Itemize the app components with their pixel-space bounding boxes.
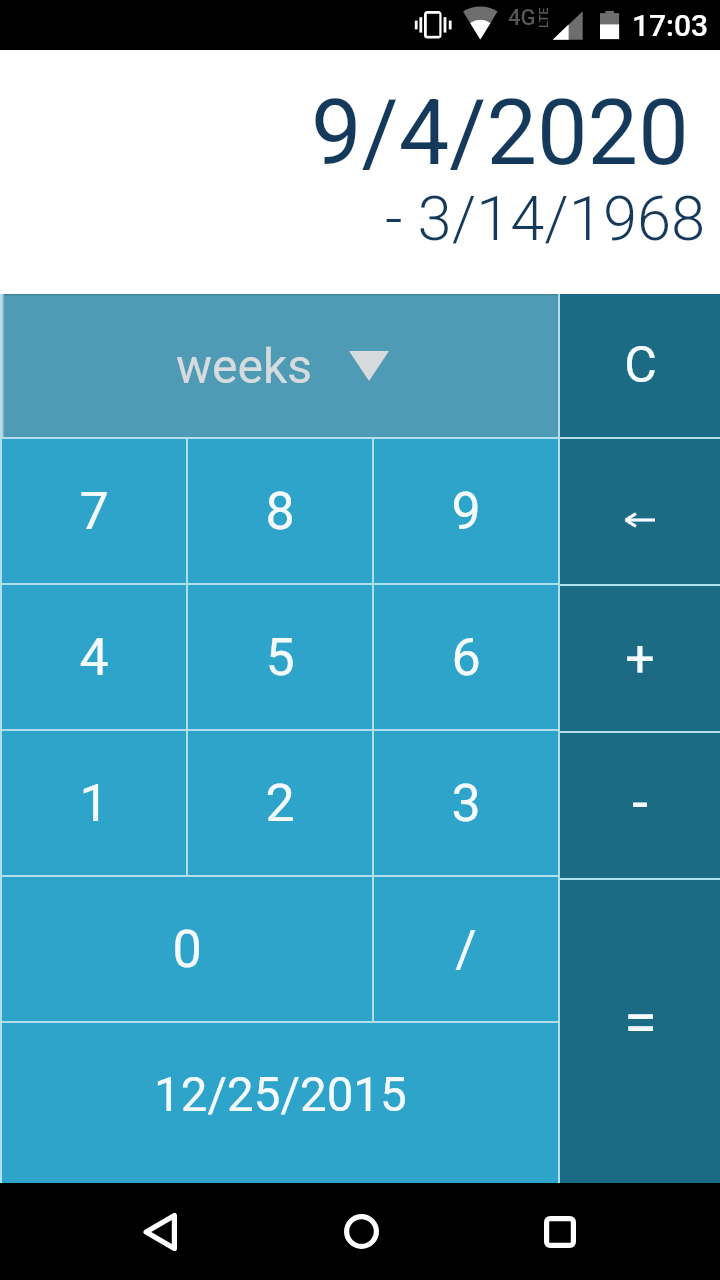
button[interactable]: / [374,877,558,1021]
staticText: - [632,768,649,836]
staticText: 9/4/2020 [311,81,689,186]
button[interactable]: 6 [374,585,558,729]
button[interactable]: 8 [188,439,372,583]
button[interactable]: 5 [188,585,372,729]
button[interactable]: 1 [2,731,186,875]
button[interactable]: 9 [374,439,558,583]
button[interactable]: Back [110,1183,210,1280]
staticText: 12/25/2015 [154,1067,407,1123]
button[interactable]: Home [311,1183,411,1280]
staticText: 17:03 [632,8,709,43]
staticText: 4G [508,5,536,31]
staticText: 1 [79,773,109,834]
button[interactable]: - [560,733,720,878]
staticText: 2 [265,773,295,834]
button[interactable]: 4 [2,585,186,729]
staticText: C [624,336,657,395]
staticText: 0 [172,919,202,980]
staticText: 9 [451,481,481,542]
button[interactable]: Backspace [560,439,720,584]
staticText: LTE [536,7,551,28]
staticText: 8 [265,481,295,542]
button[interactable]: C [560,294,720,437]
button[interactable]: 3 [374,731,558,875]
button[interactable]: 0 [2,877,372,1021]
staticText: 4 [79,627,109,688]
button[interactable]: weeks [2,294,558,437]
staticText: 3 [451,773,481,834]
staticText: - 3/14/1968 [385,183,706,255]
staticText: 6 [451,627,481,688]
button[interactable]: 7 [2,439,186,583]
staticText: 7 [79,481,109,542]
staticText: weeks [176,338,313,394]
staticText: + [625,628,655,689]
button[interactable]: 12/25/2015 [2,1023,558,1183]
button[interactable]: = [560,880,720,1183]
button[interactable]: + [560,586,720,731]
staticText: 5 [265,627,295,688]
button[interactable]: Recents [510,1183,610,1280]
staticText: / [455,919,477,980]
button[interactable]: 2 [188,731,372,875]
staticText: = [624,987,657,1057]
